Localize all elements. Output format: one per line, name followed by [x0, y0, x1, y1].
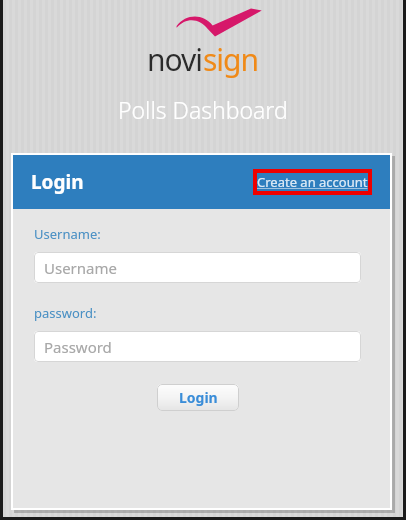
- staticText: Username: [44, 258, 117, 278]
- staticText: Create an account: [257, 173, 368, 191]
- button[interactable]: Username: [34, 252, 361, 283]
- staticText: Login: [31, 169, 84, 195]
- other: NoviSign logo mark: [143, 8, 263, 38]
- staticText: novi: [147, 39, 203, 80]
- staticText: Login: [179, 388, 218, 407]
- button[interactable]: Password: [34, 331, 361, 362]
- staticText: sign: [203, 39, 259, 80]
- staticText: Password: [44, 337, 112, 357]
- button[interactable]: Login: [157, 384, 239, 411]
- staticText: password:: [34, 304, 97, 322]
- button[interactable]: Create an account: [257, 173, 368, 191]
- staticText: Username:: [34, 225, 101, 243]
- staticText: Polls Dashboard: [118, 94, 288, 125]
